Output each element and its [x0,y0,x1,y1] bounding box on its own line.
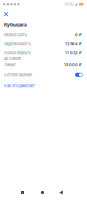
staticText: Задолженность [4,42,31,46]
staticText: Автопогашение [4,73,32,77]
button[interactable]: Назад [52,186,70,198]
staticText: 0 ₽ [75,33,82,37]
staticText: Лимит [4,63,16,67]
staticText: 12 564 ₽ [65,42,82,46]
staticText: 11 023 ₽ [65,51,82,55]
button[interactable]: Домой [33,186,52,198]
staticText: до 5 июля [4,56,21,61]
button[interactable]: Автопогашение [75,73,83,77]
staticText: Кубышка [4,22,27,28]
staticText: 16:09 [64,2,73,6]
button[interactable]: Недавние приложения [12,186,33,198]
button[interactable]: Как это работает [4,84,35,88]
staticText: 15 000 ₽ [64,63,82,67]
staticText: Как это работает [4,84,35,88]
button[interactable]: Закрыть [3,11,10,18]
staticText: Можно снять [4,33,27,37]
staticText: Нужно вернуть [4,51,31,55]
